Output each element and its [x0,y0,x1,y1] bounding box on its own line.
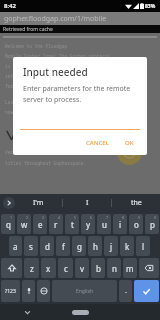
staticText: 0 [154,215,157,220]
button[interactable]: a [9,236,22,256]
button[interactable]: j [104,236,118,256]
staticText: 4 [58,215,61,220]
button[interactable]: k [120,236,134,256]
button[interactable]: g [72,236,86,256]
staticText: 83% [145,3,156,10]
staticText: retrieval network protocol designed [5,73,100,79]
staticText: 1 [10,215,13,220]
button[interactable]: 4 [49,214,63,234]
button[interactable]: Expand toolbar [3,197,15,209]
staticText: 7 [106,215,109,220]
button[interactable]: 3 [33,214,47,234]
staticText: Retrieved from cache [3,26,53,33]
button[interactable]: 5 [65,214,79,234]
staticText: Enter parameters for the remote server t… [23,84,137,104]
button[interactable]: z [24,258,39,278]
staticText: ?123 [5,288,16,295]
button[interactable]: I'm [15,194,62,212]
button[interactable]: English [52,280,117,302]
button[interactable]: 1 [1,214,15,234]
button[interactable]: OK [120,136,139,150]
staticText: s [29,241,33,252]
staticText: j [110,241,113,252]
button[interactable]: Home [54,304,107,320]
staticText: h [93,241,98,252]
button[interactable]: c [58,258,73,278]
staticText: a [13,241,18,252]
staticText: . [125,286,127,296]
staticText: OK [125,139,134,147]
staticText: f [62,241,65,252]
staticText: 2 [26,215,29,220]
staticText: b [96,263,101,274]
button[interactable]: Backspace [139,258,159,278]
staticText: m [126,263,134,274]
staticText: gopher.floodgap.com/1/mobile [4,14,107,24]
staticText: English [76,288,94,295]
staticText: x [46,263,51,274]
button[interactable]: Voice input [22,280,35,302]
button[interactable]: x [41,258,56,278]
staticText: v [80,263,85,274]
staticText: g [77,241,82,252]
staticText: o [134,219,139,230]
button[interactable]: d [40,236,54,256]
button[interactable]: m [123,258,137,278]
button[interactable]: s [24,236,38,256]
button[interactable]: ?123 [1,280,20,302]
staticText: Veronica allows you to search menu [5,149,97,155]
button[interactable]: h [88,236,102,256]
button[interactable] [20,116,140,130]
staticText: is a distributed document search and [5,63,103,69]
staticText: 8:42 [4,2,16,10]
staticText: I'm [33,198,44,208]
button[interactable]: Change language [37,280,50,302]
button[interactable]: . [119,280,132,302]
staticText: 9 [138,215,141,220]
button[interactable]: Hide keyboard [0,304,54,320]
staticText: Last updated 2024 [5,99,51,105]
staticText: Mobile Gopher Zone! The Gopher protocol [5,53,111,59]
button[interactable]: l [136,236,150,256]
staticText: now serving mobile clients [5,109,76,115]
button[interactable]: 2 [17,214,31,234]
button[interactable]: 0 [145,214,159,234]
staticText: l [142,241,145,252]
button[interactable]: 8 [113,214,127,234]
staticText: w [21,219,28,230]
staticText: CANCEL [86,139,109,147]
button[interactable]: Shift [1,258,22,278]
staticText: 6 [90,215,93,220]
button[interactable]: f [56,236,70,256]
button[interactable]: I [63,194,111,212]
staticText: q [6,219,11,230]
button[interactable]: v [75,258,89,278]
staticText: k [125,241,130,252]
button[interactable]: Enter [134,280,159,302]
staticText: for the Internet. [5,83,51,89]
button[interactable]: b [91,258,105,278]
staticText: Input needed [23,65,88,79]
button[interactable]: 7 [97,214,111,234]
staticText: I [86,198,89,208]
staticText: p [150,219,155,230]
staticText: n [112,263,117,274]
staticText: 3 [42,215,45,220]
button[interactable]: gopher.floodgap.com/1/mobile [0,12,160,25]
staticText: 5 [74,215,77,220]
button[interactable]: 9 [129,214,143,234]
staticText: i [119,219,122,230]
button[interactable]: the [112,194,160,212]
staticText: y [86,219,91,230]
button[interactable]: n [107,258,121,278]
staticText: Welcome to the Floodgap [5,43,68,49]
button[interactable]: Refresh [117,140,142,165]
button[interactable]: 6 [81,214,95,234]
staticText: titles throughout Gopherspace. [5,160,86,166]
staticText: u [102,219,107,230]
staticText: d [45,241,50,252]
button[interactable]: CANCEL [81,136,114,150]
staticText: 8 [122,215,125,220]
